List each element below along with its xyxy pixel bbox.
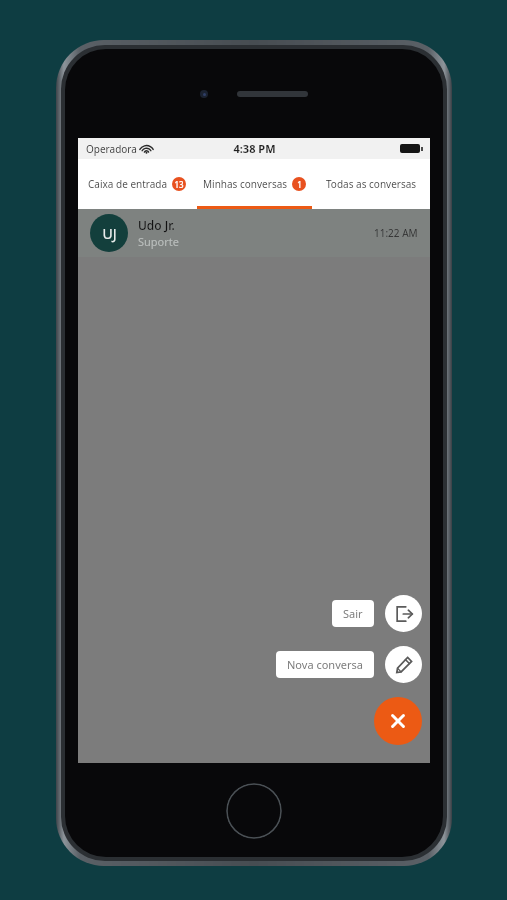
staticText: UJ — [102, 224, 117, 243]
staticText: 13 — [174, 179, 184, 190]
staticText: Suporte — [138, 234, 179, 249]
button[interactable]: Minhas conversas — [196, 159, 313, 209]
button[interactable]: Caixa de entrada — [78, 159, 196, 209]
staticText: Udo Jr. — [138, 217, 175, 233]
staticText: 11:22 AM — [374, 226, 418, 240]
button[interactable]: Nova conversa — [276, 651, 374, 678]
staticText: Todas as conversas — [326, 177, 417, 191]
staticText: 4:38 PM — [233, 141, 276, 156]
staticText: Caixa de entrada — [88, 177, 168, 191]
button[interactable]: Sair — [385, 595, 422, 632]
staticText: Minhas conversas — [203, 177, 288, 191]
button[interactable]: Nova conversa — [385, 646, 422, 683]
staticText: Sair — [343, 606, 363, 621]
button[interactable]: UJ — [78, 209, 430, 257]
button[interactable]: Sair — [332, 600, 374, 627]
staticText: Operadora — [86, 142, 137, 156]
staticText: 1 — [297, 179, 302, 190]
button[interactable]: Home — [226, 783, 282, 839]
staticText: Nova conversa — [287, 657, 363, 672]
button[interactable]: Fechar menu — [374, 697, 422, 745]
button[interactable]: Todas as conversas — [313, 159, 430, 209]
